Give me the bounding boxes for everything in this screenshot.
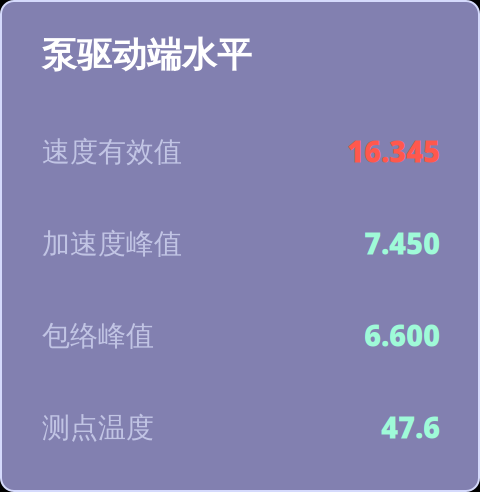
staticText: 加速度峰值 <box>42 227 182 261</box>
button[interactable]: 测点温度 <box>2 382 478 474</box>
staticText: 测点温度 <box>42 411 154 445</box>
staticText: 16.345 <box>347 131 440 170</box>
staticText: 47.6 <box>381 407 440 446</box>
staticText: 泵驱动端水平 <box>42 34 252 76</box>
button[interactable]: 速度有效值 <box>2 106 478 198</box>
button[interactable]: 加速度峰值 <box>2 198 478 290</box>
staticText: 7.450 <box>364 223 440 262</box>
button[interactable]: 包络峰值 <box>2 290 478 382</box>
staticText: 速度有效值 <box>42 135 182 169</box>
staticText: 6.600 <box>364 315 440 354</box>
staticText: 包络峰值 <box>42 319 154 353</box>
